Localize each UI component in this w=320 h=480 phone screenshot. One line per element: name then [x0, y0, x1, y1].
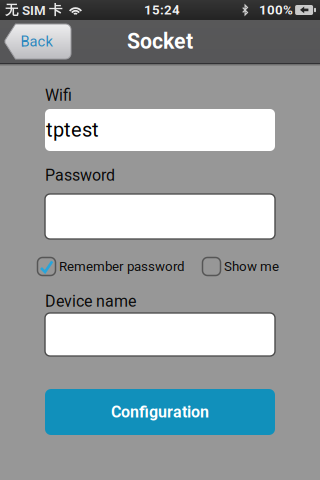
staticText: 100% [259, 2, 293, 18]
staticText: Configuration [111, 403, 209, 421]
staticText: Back [20, 33, 52, 50]
staticText: Wifi [45, 86, 72, 105]
button[interactable]: Back [4, 24, 71, 59]
staticText: Remember password [59, 259, 185, 274]
button[interactable]: Show me [202, 257, 279, 276]
staticText: tptest [46, 118, 99, 142]
staticText: Password [45, 166, 115, 185]
staticText: Device name [45, 292, 136, 311]
staticText: 15:24 [144, 2, 180, 18]
button[interactable]: Configuration [45, 389, 275, 435]
button[interactable]: Remember password [37, 257, 185, 276]
staticText: Socket [127, 29, 193, 54]
staticText: Show me [224, 259, 279, 274]
staticText: 无 SIM 卡 [5, 2, 62, 18]
